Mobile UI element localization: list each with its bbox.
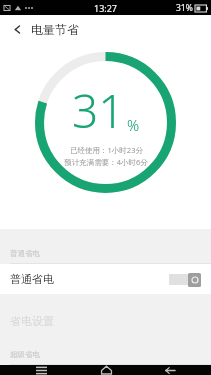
button[interactable]: Back [7,19,27,39]
staticText: 普通省电 [10,272,54,286]
staticText: % [127,115,140,135]
staticText: 普通省电 [10,249,40,258]
button[interactable]: 省电设置 [0,306,211,336]
staticText: 已经使用：1小时23分 [70,145,143,155]
staticText: 电量节省 [31,22,79,37]
staticText: 省电设置 [10,314,54,328]
button[interactable]: Back [147,365,193,375]
button[interactable]: Menu [18,365,64,375]
staticText: 31% [176,2,193,14]
staticText: 超级省电 [10,350,40,359]
staticText: 13:27 [94,2,118,14]
button[interactable]: Home [83,365,129,375]
staticText: 31 [72,79,125,142]
staticText: 预计充满需要：4小时6分 [64,157,148,167]
button[interactable]: 普通省电 [0,264,211,294]
